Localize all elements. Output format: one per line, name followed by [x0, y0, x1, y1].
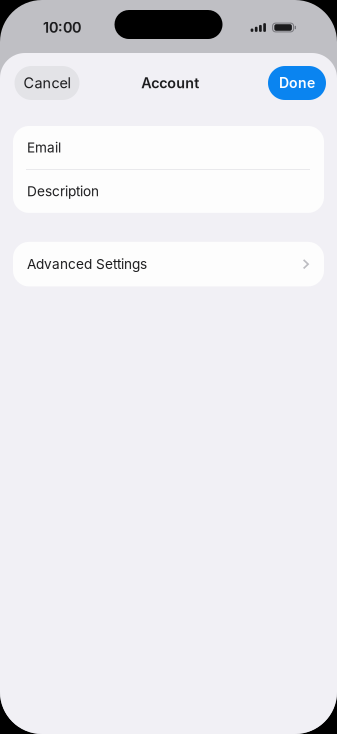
- button[interactable]: Cancel: [14, 66, 79, 100]
- staticText: 10:00: [43, 19, 81, 36]
- staticText: Account: [141, 74, 199, 92]
- staticText: Cancel: [23, 74, 70, 92]
- staticText: Description: [27, 183, 99, 200]
- staticText: Email: [27, 139, 61, 156]
- button[interactable]: Done: [268, 66, 326, 100]
- staticText: Done: [279, 74, 315, 91]
- button[interactable]: Advanced Settings: [13, 242, 324, 286]
- button[interactable]: Description: [13, 170, 324, 213]
- staticText: Advanced Settings: [27, 256, 147, 272]
- button[interactable]: Email: [13, 126, 324, 169]
